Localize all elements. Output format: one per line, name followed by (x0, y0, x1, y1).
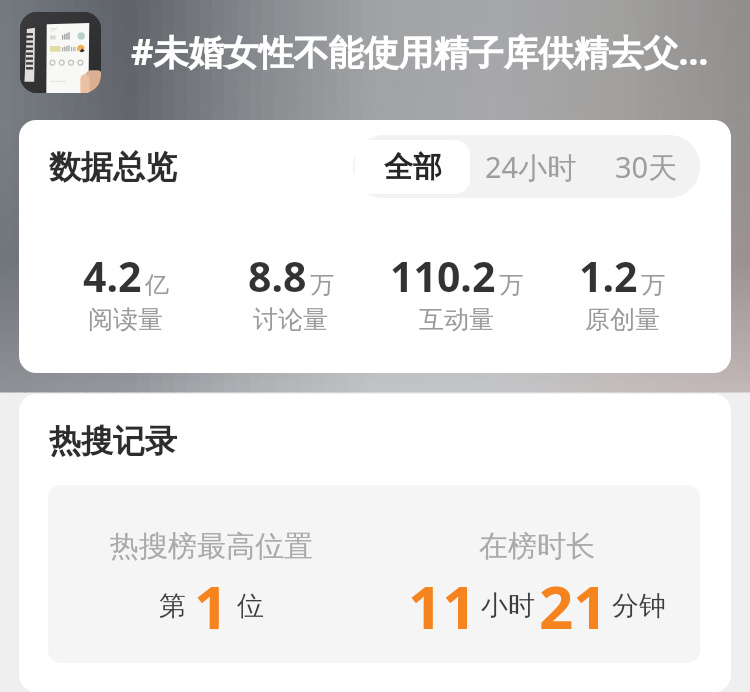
staticText: #未婚女性不能使用精子库供精去父… (131, 28, 709, 76)
staticText: 万 (310, 270, 334, 300)
staticText: 全部 (384, 149, 442, 186)
staticText: 第 (159, 589, 186, 623)
staticText: 24小时 (485, 147, 577, 187)
staticText: 阅读量 (88, 304, 163, 335)
staticText: 1 (194, 565, 229, 647)
staticText: 8.8 (248, 248, 307, 304)
staticText: 1.2 (579, 248, 638, 304)
staticText: 分钟 (612, 589, 666, 623)
button[interactable]: 30天 (592, 135, 700, 198)
staticText: 讨论量 (253, 304, 328, 335)
staticText: 万 (499, 270, 523, 300)
staticText: 110.2 (390, 248, 496, 304)
staticText: 互动量 (419, 304, 494, 335)
staticText: 热搜记录 (49, 421, 177, 461)
staticText: 原创量 (585, 304, 660, 335)
button[interactable]: 24小时 (470, 135, 592, 198)
staticText: 21 (539, 565, 608, 647)
staticText: 4.2 (83, 248, 142, 304)
button[interactable]: Topic image (20, 12, 101, 93)
staticText: 小时 (481, 589, 535, 623)
staticText: 热搜榜最高位置 (110, 528, 313, 565)
staticText: 30天 (615, 147, 678, 187)
staticText: 11 (408, 565, 477, 647)
button[interactable]: 全部 (355, 140, 470, 194)
staticText: 数据总览 (49, 147, 177, 187)
staticText: 位 (237, 589, 264, 623)
staticText: 亿 (145, 270, 169, 300)
staticText: 万 (641, 270, 665, 300)
staticText: 在榜时长 (479, 528, 595, 565)
